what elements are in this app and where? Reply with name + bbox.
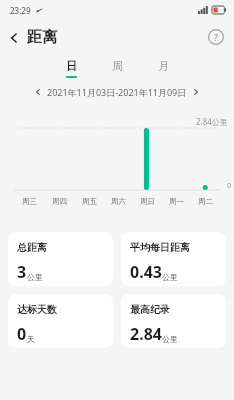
staticText: 23:29 — [10, 5, 31, 16]
staticText: 达标天数 — [17, 303, 57, 316]
staticText: 2.84公里 — [196, 116, 228, 127]
button[interactable]: 周 — [94, 59, 140, 76]
staticText: 2021年11月03日-2021年11月09日 — [47, 86, 187, 98]
staticText: 周五 — [82, 197, 97, 206]
other: Next week — [192, 88, 200, 96]
staticText: 0 — [227, 181, 232, 191]
button[interactable]: Previous week — [0, 82, 234, 102]
staticText: 公里 — [27, 272, 43, 282]
staticText: 3 — [17, 261, 27, 283]
button[interactable]: 总距离 — [8, 232, 113, 286]
staticText: 公里 — [162, 334, 178, 344]
other: Previous week — [34, 88, 42, 96]
staticText: 日 — [66, 59, 77, 73]
staticText: 周四 — [52, 197, 67, 206]
staticText: 最高纪录 — [130, 303, 170, 316]
button[interactable]: Back — [0, 24, 65, 51]
staticText: ? — [214, 31, 218, 43]
other: Back — [8, 32, 20, 44]
staticText: 周 — [112, 59, 123, 73]
staticText: 距离 — [27, 28, 57, 47]
staticText: 天 — [27, 334, 35, 344]
staticText: 平均每日距离 — [130, 241, 190, 254]
staticText: 总距离 — [17, 241, 47, 254]
staticText: 周一 — [169, 197, 184, 206]
button[interactable]: Help — [208, 29, 224, 45]
staticText: 周日 — [140, 197, 155, 206]
button[interactable]: 最高纪录 — [121, 294, 226, 348]
staticText: 月 — [158, 59, 169, 73]
staticText: 周二 — [198, 197, 213, 206]
button[interactable]: 平均每日距离 — [121, 232, 226, 286]
staticText: 周三 — [22, 197, 37, 206]
staticText: 周六 — [111, 197, 126, 206]
button[interactable]: 月 — [140, 59, 186, 76]
staticText: 公里 — [162, 272, 178, 282]
staticText: 0 — [17, 323, 27, 345]
button[interactable]: 达标天数 — [8, 294, 113, 348]
staticText: 0.43 — [130, 261, 162, 283]
staticText: 2.84 — [130, 323, 162, 345]
button[interactable]: 日 — [48, 59, 94, 78]
